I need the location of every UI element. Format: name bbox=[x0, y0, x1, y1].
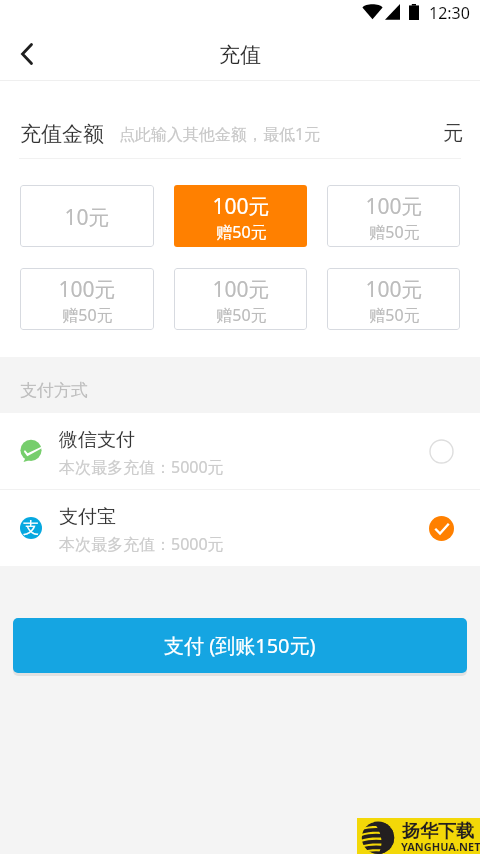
button[interactable]: Back bbox=[0, 30, 50, 81]
staticText: 100元 bbox=[365, 275, 423, 304]
staticText: 充值 bbox=[219, 42, 261, 68]
staticText: 微信支付 bbox=[59, 428, 135, 452]
button[interactable]: 点此输入其他金额，最低1元 bbox=[119, 123, 443, 145]
staticText: 100元 bbox=[212, 275, 270, 304]
staticText: 扬华下载 bbox=[402, 820, 474, 843]
button[interactable]: 100元 bbox=[327, 268, 460, 330]
button[interactable]: 100元 bbox=[327, 185, 460, 247]
staticText: 赠50元 bbox=[369, 221, 420, 243]
staticText: 赠50元 bbox=[369, 304, 420, 326]
other: Selected bbox=[429, 516, 454, 541]
staticText: 100元 bbox=[58, 275, 116, 304]
staticText: 充值金额 bbox=[20, 121, 104, 147]
staticText: 支付宝 bbox=[59, 505, 116, 529]
staticText: 支 bbox=[23, 518, 39, 538]
staticText: 赠50元 bbox=[62, 304, 113, 326]
staticText: 赠50元 bbox=[216, 221, 267, 243]
staticText: 元 bbox=[443, 121, 463, 146]
staticText: 本次最多充值：5000元 bbox=[59, 456, 224, 478]
staticText: 100元 bbox=[212, 192, 270, 221]
staticText: 12:30 bbox=[429, 2, 470, 19]
other: Not selected bbox=[429, 439, 454, 464]
button[interactable]: 支 bbox=[0, 490, 480, 566]
button[interactable]: 100元 bbox=[174, 268, 307, 330]
staticText: 本次最多充值：5000元 bbox=[59, 533, 224, 555]
staticText: 100元 bbox=[365, 192, 423, 221]
staticText: 10元 bbox=[64, 203, 110, 232]
staticText: 支付方式 bbox=[20, 380, 88, 401]
button[interactable]: 100元 bbox=[20, 268, 154, 330]
staticText: 赠50元 bbox=[216, 304, 267, 326]
staticText: 支付 (到账150元) bbox=[164, 632, 316, 659]
button[interactable]: 微信支付 bbox=[0, 413, 480, 489]
button[interactable]: 10元 bbox=[20, 185, 154, 247]
staticText: YANGHUA.NET bbox=[401, 839, 480, 854]
button[interactable]: 100元 bbox=[174, 185, 307, 247]
button[interactable]: 支付 (到账150元) bbox=[13, 618, 467, 673]
